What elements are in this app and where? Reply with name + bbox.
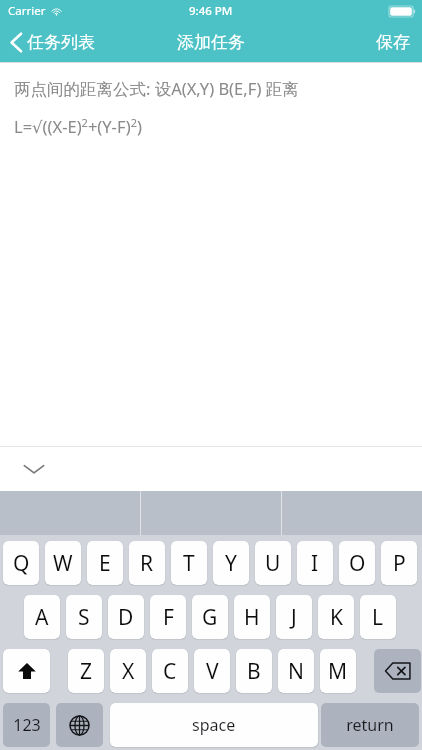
- staticText: 123: [13, 714, 41, 736]
- button[interactable]: X: [110, 649, 146, 693]
- staticText: R: [140, 549, 154, 578]
- staticText: return: [346, 714, 394, 736]
- button[interactable]: space: [110, 703, 318, 747]
- button[interactable]: A: [24, 595, 60, 639]
- staticText: M: [328, 657, 348, 686]
- button[interactable]: D: [108, 595, 144, 639]
- staticText: P: [393, 549, 406, 578]
- staticText: S: [78, 603, 90, 632]
- button[interactable]: I: [297, 541, 333, 585]
- button[interactable]: Y: [213, 541, 249, 585]
- button[interactable]: Q: [3, 541, 39, 585]
- button[interactable]: Z: [68, 649, 104, 693]
- staticText: 添加任务: [177, 32, 245, 53]
- button[interactable]: 123: [3, 703, 50, 747]
- button[interactable]: G: [192, 595, 228, 639]
- button[interactable]: F: [150, 595, 186, 639]
- staticText: space: [192, 714, 236, 736]
- button[interactable]: C: [152, 649, 188, 693]
- button[interactable]: Switch keyboard language: [56, 703, 103, 747]
- button[interactable]: P: [381, 541, 417, 585]
- button[interactable]: K: [318, 595, 354, 639]
- button[interactable]: return: [321, 703, 419, 747]
- staticText: G: [202, 603, 218, 632]
- staticText: J: [291, 603, 297, 632]
- staticText: U: [265, 549, 281, 578]
- button[interactable]: R: [129, 541, 165, 585]
- staticText: W: [53, 549, 73, 578]
- staticText: D: [118, 603, 134, 632]
- staticText: N: [288, 657, 304, 686]
- staticText: X: [122, 657, 135, 686]
- staticText: E: [99, 549, 111, 578]
- button[interactable]: V: [194, 649, 230, 693]
- staticText: 任务列表: [27, 32, 95, 53]
- button[interactable]: Shift: [3, 649, 50, 693]
- staticText: Q: [13, 549, 30, 578]
- staticText: Y: [225, 549, 237, 578]
- button[interactable]: Backspace: [374, 649, 421, 693]
- staticText: O: [349, 549, 366, 578]
- staticText: H: [244, 603, 260, 632]
- staticText: B: [247, 657, 261, 686]
- staticText: V: [206, 657, 219, 686]
- staticText: A: [35, 603, 49, 632]
- staticText: 两点间的距离公式: 设A(X,Y) B(E,F) 距离 L=√((X-E)2+(…: [14, 77, 299, 138]
- button[interactable]: T: [171, 541, 207, 585]
- button[interactable]: 任务列表: [0, 28, 107, 57]
- button[interactable]: Hide keyboard: [14, 449, 54, 489]
- staticText: I: [311, 549, 319, 578]
- staticText: 9:46 PM: [189, 3, 233, 19]
- button[interactable]: S: [66, 595, 102, 639]
- staticText: Carrier: [8, 3, 46, 19]
- button[interactable]: H: [234, 595, 270, 639]
- button[interactable]: J: [276, 595, 312, 639]
- staticText: K: [330, 603, 343, 632]
- button[interactable]: O: [339, 541, 375, 585]
- staticText: F: [163, 603, 174, 632]
- button[interactable]: 保存: [364, 26, 422, 59]
- button[interactable]: U: [255, 541, 291, 585]
- button[interactable]: M: [320, 649, 356, 693]
- staticText: T: [183, 549, 195, 578]
- staticText: L: [372, 603, 384, 632]
- button[interactable]: W: [45, 541, 81, 585]
- button[interactable]: E: [87, 541, 123, 585]
- button[interactable]: N: [278, 649, 314, 693]
- staticText: C: [163, 657, 177, 686]
- button[interactable]: L: [360, 595, 396, 639]
- button[interactable]: B: [236, 649, 272, 693]
- staticText: Z: [80, 657, 93, 686]
